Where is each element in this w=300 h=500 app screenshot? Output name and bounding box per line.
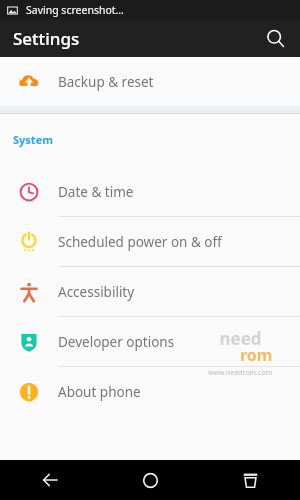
button[interactable]: About phone bbox=[0, 367, 300, 416]
staticText: Settings bbox=[13, 27, 80, 50]
staticText: www.needrom.com bbox=[208, 368, 273, 378]
button[interactable]: Scheduled power on & off bbox=[0, 217, 300, 266]
button[interactable]: Home bbox=[100, 460, 200, 500]
staticText: About phone bbox=[58, 383, 141, 401]
button[interactable]: Accessibility bbox=[0, 267, 300, 316]
button[interactable]: Backup & reset bbox=[0, 57, 300, 106]
staticText: Backup & reset bbox=[58, 73, 154, 91]
staticText: System bbox=[13, 132, 53, 147]
staticText: Accessibility bbox=[58, 283, 135, 301]
staticText: Developer options bbox=[58, 333, 175, 351]
button[interactable]: Back bbox=[0, 460, 100, 500]
staticText: Scheduled power on & off bbox=[58, 233, 222, 251]
button[interactable]: Developer options bbox=[0, 317, 300, 366]
button[interactable]: Recent apps bbox=[200, 460, 300, 500]
staticText: Saving screenshot… bbox=[26, 3, 124, 17]
staticText: need bbox=[219, 327, 262, 350]
staticText: Date & time bbox=[58, 183, 134, 201]
staticText: rom bbox=[240, 344, 273, 366]
button[interactable]: Date & time bbox=[0, 167, 300, 216]
button[interactable]: Search bbox=[258, 21, 292, 55]
